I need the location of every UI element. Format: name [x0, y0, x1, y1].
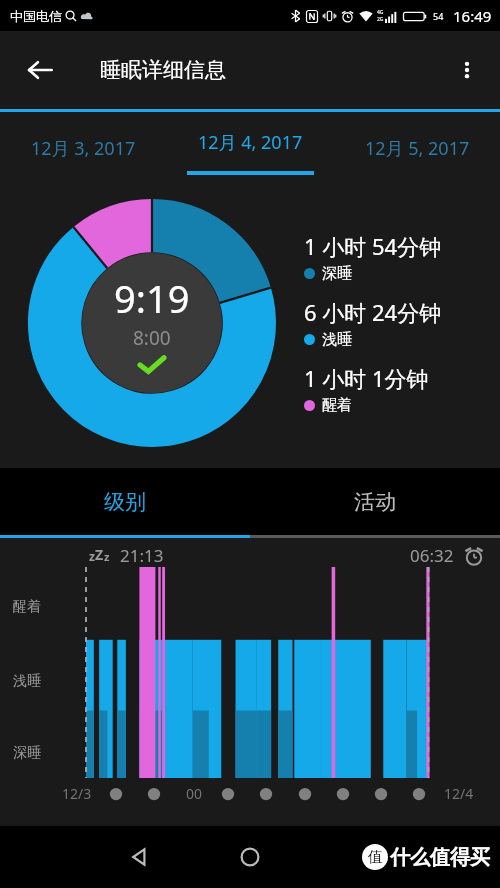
staticText: 什么值得买 [390, 845, 490, 870]
staticText: 54 [433, 10, 444, 22]
button[interactable]: 12月 5, 2017 [334, 112, 500, 184]
staticText: 12月 3, 2017 [31, 136, 136, 161]
staticText: 深睡 [322, 264, 352, 283]
staticText: 浅睡 [13, 672, 41, 690]
staticText: z [104, 549, 110, 564]
staticText: 活动 [354, 489, 396, 515]
staticText: 12月 5, 2017 [365, 136, 470, 161]
button[interactable]: 12月 3, 2017 [0, 112, 166, 184]
staticText: 深睡 [13, 744, 41, 762]
staticText: 级别 [104, 489, 146, 515]
staticText: 浅睡 [322, 330, 352, 349]
button[interactable]: 1 小时 54分钟 [304, 231, 494, 283]
button[interactable]: Back [14, 44, 66, 96]
staticText: 睡眠详细信息 [100, 57, 226, 83]
staticText: 值 [368, 848, 383, 867]
staticText: Z [95, 545, 104, 564]
button[interactable]: 12月 4, 2017 [165, 112, 335, 184]
staticText: 1 小时 1分钟 [304, 363, 429, 393]
staticText: 12/4 [444, 784, 474, 803]
staticText: 06:32 [410, 544, 454, 567]
staticText: 醒着 [13, 598, 41, 616]
staticText: z [89, 548, 95, 564]
staticText: 8:00 [133, 325, 171, 351]
staticText: 6 小时 24分钟 [304, 297, 442, 327]
staticText: 12/3 [62, 784, 92, 803]
staticText: 12月 4, 2017 [198, 130, 303, 155]
staticText: 21:13 [120, 544, 164, 567]
staticText: 4G [377, 9, 384, 16]
button[interactable]: More options [442, 45, 492, 95]
staticText: 9:19 [114, 272, 190, 324]
button[interactable]: 6 小时 24分钟 [304, 297, 494, 349]
staticText: 中国电信 [10, 8, 62, 24]
staticText: 1 小时 54分钟 [304, 231, 442, 261]
button[interactable]: 1 小时 1分钟 [304, 363, 494, 415]
button[interactable]: Home [226, 833, 274, 881]
staticText: 16:49 [453, 6, 492, 26]
button[interactable]: 级别 [0, 468, 250, 535]
staticText: 醒着 [322, 396, 352, 415]
button[interactable]: 活动 [250, 468, 500, 535]
staticText: 00 [186, 784, 203, 803]
button[interactable]: Back [116, 833, 164, 881]
staticText: 2G [377, 16, 384, 23]
button[interactable] [86, 567, 442, 778]
